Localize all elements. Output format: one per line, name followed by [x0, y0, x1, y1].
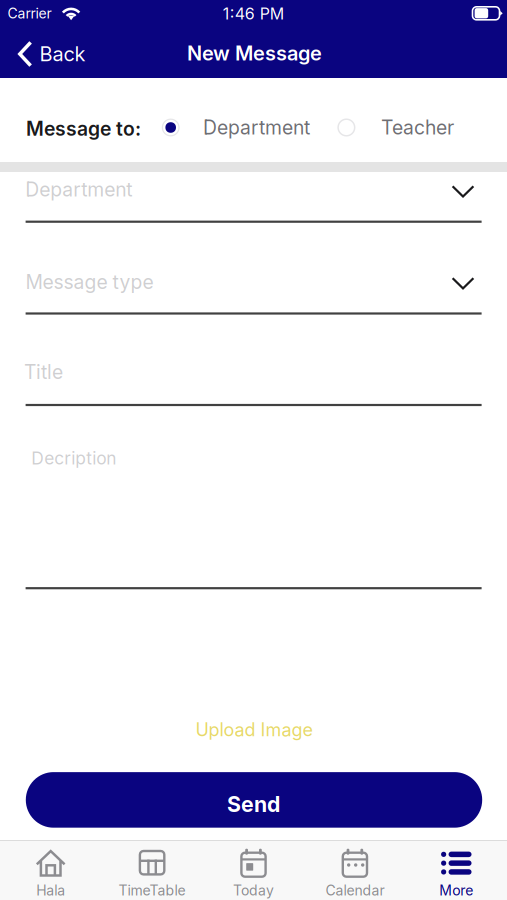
staticText: Message to: [26, 117, 141, 140]
button[interactable]: Choose message type [441, 266, 484, 300]
staticText: Department [203, 116, 310, 139]
staticText: Send [227, 791, 280, 817]
staticText: Back [39, 42, 85, 66]
staticText: Teacher [381, 116, 454, 139]
staticText: More [439, 882, 473, 899]
button[interactable]: Upload Image [181, 710, 326, 750]
staticText: Calendar [325, 882, 384, 899]
button[interactable]: TimeTable [101, 841, 203, 900]
staticText: Department [25, 178, 132, 201]
button[interactable]: Hala [0, 841, 101, 900]
staticText: New Message [187, 41, 322, 65]
staticText: Hala [36, 882, 65, 899]
staticText: Message type [26, 270, 154, 294]
staticText: Today [233, 882, 274, 899]
staticText: Upload Image [195, 719, 312, 741]
button[interactable]: Department [162, 114, 310, 140]
staticText: TimeTable [119, 882, 186, 899]
button[interactable]: Back [1, 33, 97, 75]
button[interactable]: Today [203, 841, 304, 900]
button[interactable]: Send [26, 772, 482, 828]
button[interactable]: Choose department [441, 174, 484, 209]
staticText: Carrier [7, 5, 51, 22]
staticText: 1:46 PM [223, 4, 284, 23]
staticText: Decription [31, 448, 116, 469]
button[interactable]: Teacher [338, 114, 454, 140]
button[interactable]: Calendar [304, 841, 406, 900]
staticText: Title [24, 360, 63, 384]
button[interactable]: More [406, 841, 507, 900]
